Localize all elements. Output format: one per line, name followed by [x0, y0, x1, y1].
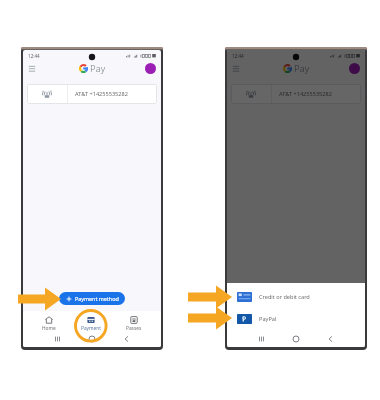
staticText: Passes [126, 325, 142, 332]
button[interactable]: Credit or debit card [227, 286, 365, 308]
staticText: Home [42, 325, 56, 332]
staticText: Pay [294, 62, 310, 75]
staticText: 12:44 [28, 53, 40, 59]
staticText: Payment [81, 325, 101, 332]
staticText: AT&T +14255535282 [279, 90, 332, 98]
button[interactable]: Payment method [59, 292, 125, 305]
staticText: Payment method [75, 295, 119, 302]
button[interactable]: Menu [231, 64, 241, 74]
staticText: AT&T +14255535282 [75, 90, 128, 98]
button[interactable]: PayPal [227, 308, 365, 330]
button[interactable]: Account [349, 63, 360, 74]
button[interactable]: Passes [120, 315, 148, 333]
staticText: Credit or debit card [259, 293, 310, 301]
button[interactable]: Home [36, 315, 62, 333]
staticText: PayPal [259, 315, 277, 323]
staticText: Pay [90, 62, 106, 75]
button[interactable]: AT&T +14255535282 [231, 84, 361, 104]
button[interactable]: AT&T +14255535282 [27, 84, 157, 104]
staticText: 12:44 [232, 53, 244, 59]
button[interactable]: Account [145, 63, 156, 74]
button[interactable]: Menu [27, 64, 37, 74]
button[interactable]: Payment [75, 315, 107, 333]
